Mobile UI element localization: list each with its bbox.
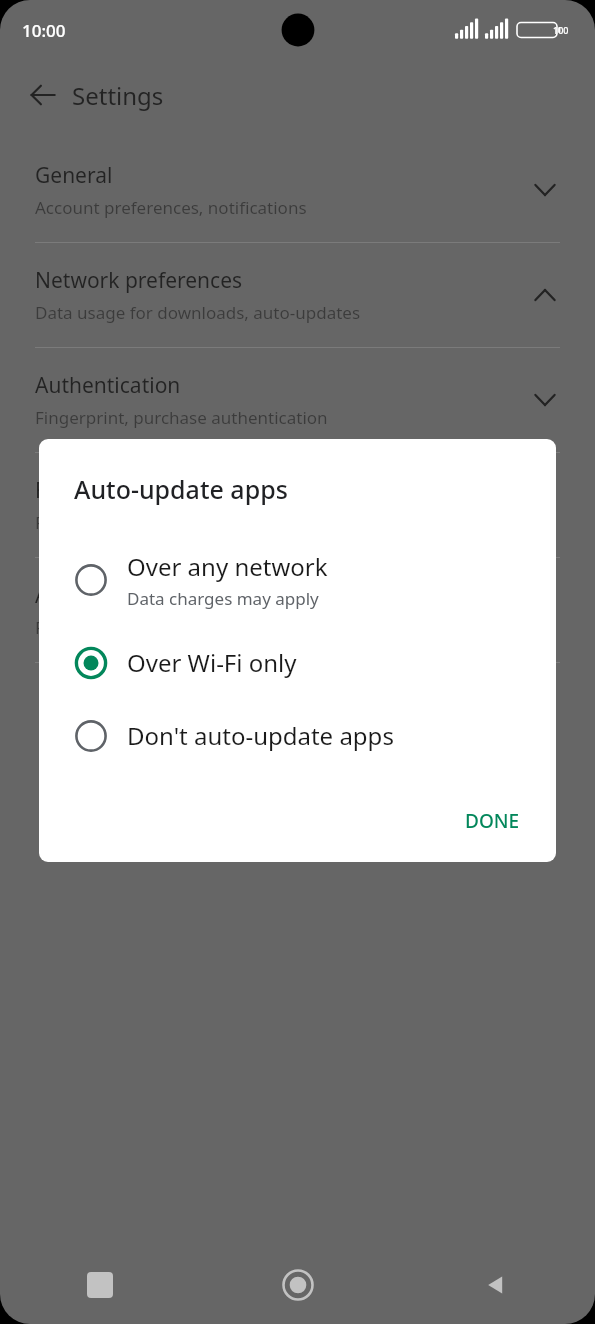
button[interactable]: Don't auto-update apps — [39, 699, 556, 772]
button[interactable]: About — [0, 558, 595, 662]
staticText: Parental control, parent guide — [35, 511, 275, 534]
staticText: Data charges may apply — [127, 587, 319, 610]
staticText: DONE — [465, 808, 520, 834]
staticText: Authentication — [35, 371, 181, 400]
button[interactable]: Home — [199, 1246, 397, 1324]
staticText: Data usage for downloads, auto-updates — [35, 301, 361, 324]
button[interactable]: DONE — [453, 800, 532, 842]
staticText: Settings — [72, 79, 164, 112]
button[interactable]: Over any network — [39, 534, 556, 626]
staticText: 10:00 — [22, 19, 66, 42]
button[interactable]: Authentication — [0, 348, 595, 452]
staticText: Over Wi-Fi only — [127, 646, 297, 679]
staticText: Fingerprint, purchase authentication — [35, 406, 328, 429]
button[interactable]: Back — [18, 70, 68, 120]
staticText: General — [35, 161, 113, 190]
staticText: Over any network — [127, 550, 328, 583]
button[interactable]: Recent apps — [0, 1246, 199, 1324]
button[interactable]: Network preferences — [0, 243, 595, 347]
staticText: About — [35, 581, 95, 610]
button[interactable]: Family — [0, 453, 595, 557]
staticText: Network preferences — [35, 266, 243, 295]
staticText: Family — [35, 476, 99, 505]
staticText: Don't auto-update apps — [127, 719, 394, 752]
button[interactable]: Over Wi-Fi only — [39, 626, 556, 699]
staticText: Account preferences, notifications — [35, 196, 307, 219]
staticText: Auto-update apps — [74, 472, 288, 506]
staticText: Play Store, build version, device certif… — [35, 616, 385, 639]
button[interactable]: Back — [397, 1246, 595, 1324]
button[interactable]: General — [0, 138, 595, 242]
staticText: 100 — [553, 24, 569, 36]
